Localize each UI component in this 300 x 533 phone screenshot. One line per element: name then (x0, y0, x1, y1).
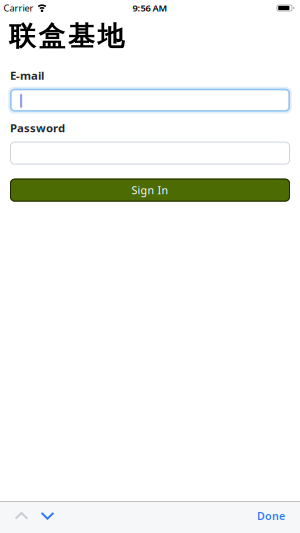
staticText: Password (10, 120, 65, 136)
textField[interactable] (19, 85, 281, 115)
staticText: Carrier (3, 2, 33, 14)
button[interactable]: Done (257, 500, 300, 532)
staticText: 9:56 AM (132, 2, 167, 14)
staticText: Done (257, 509, 285, 523)
staticText: 联盒基地 (9, 20, 124, 53)
button[interactable]: Sign In (0, 179, 300, 202)
staticText: Sign In (131, 183, 168, 197)
secureTextField[interactable] (19, 138, 281, 168)
button[interactable]: Previous field (0, 500, 28, 531)
staticText: E-mail (10, 68, 44, 83)
button[interactable]: Next field (28, 500, 54, 531)
